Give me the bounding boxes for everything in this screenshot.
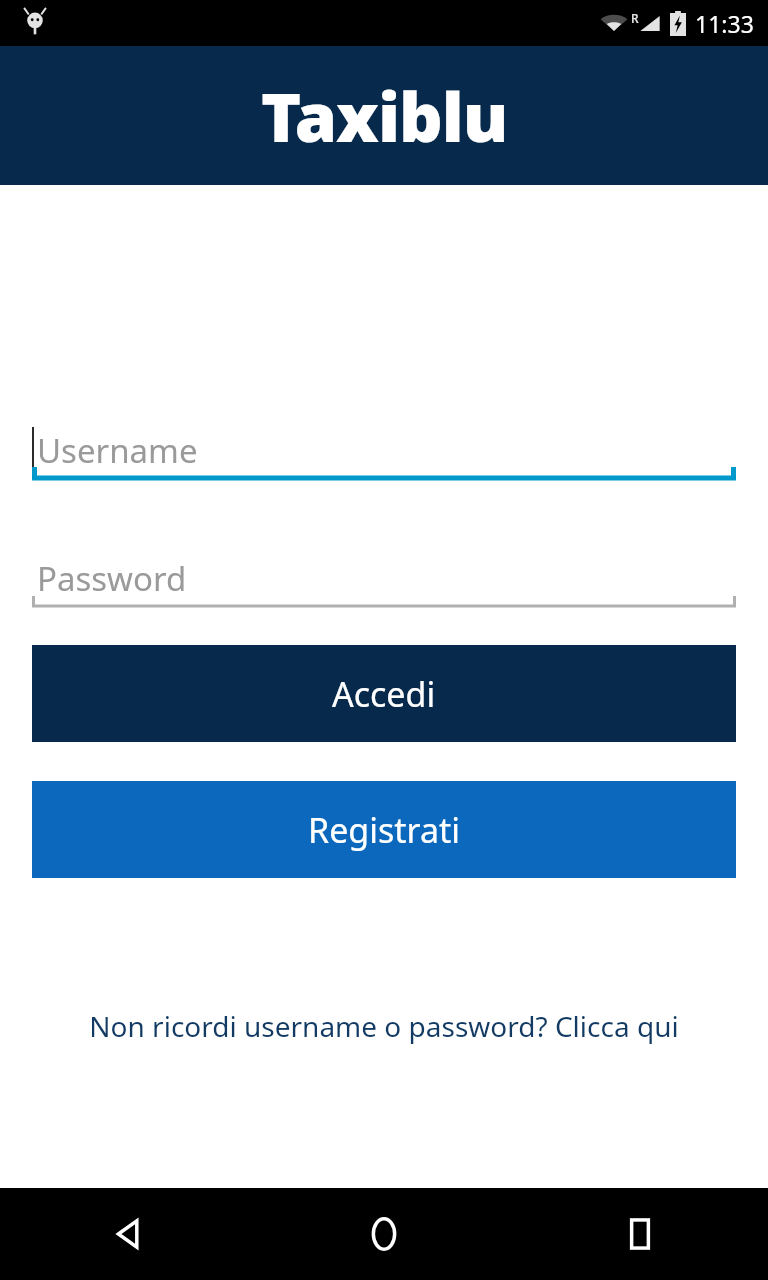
button[interactable]: Registrati xyxy=(32,781,736,878)
button[interactable]: Home xyxy=(256,1188,512,1280)
button[interactable]: Username xyxy=(32,417,736,483)
staticText: Taxiblu xyxy=(261,69,508,162)
button[interactable]: Accedi xyxy=(32,645,736,742)
button[interactable]: Password xyxy=(32,545,736,611)
staticText: Password xyxy=(37,556,187,601)
staticText: Registrati xyxy=(308,807,461,853)
button[interactable]: Recent apps xyxy=(512,1188,768,1280)
staticText: Non ricordi username o password? Clicca … xyxy=(89,1007,679,1045)
button[interactable]: Back xyxy=(0,1188,256,1280)
staticText: Username xyxy=(37,428,198,473)
button[interactable]: Non ricordi username o password? Clicca … xyxy=(0,996,768,1056)
staticText: Accedi xyxy=(332,671,436,717)
staticText: 11:33 xyxy=(695,8,754,39)
staticText: R xyxy=(631,10,639,26)
